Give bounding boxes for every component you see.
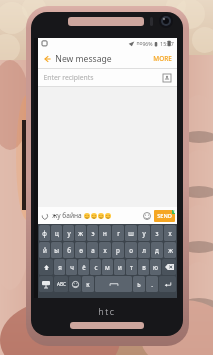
staticText: ц (55, 229, 59, 237)
button[interactable]: MORE (153, 54, 177, 63)
staticText: ш (128, 229, 134, 237)
button[interactable]: Enter recipients (38, 69, 177, 86)
staticText: н (103, 229, 107, 237)
button[interactable]: х (99, 242, 111, 258)
button[interactable]: Enter (159, 276, 176, 292)
button[interactable]: ABC (54, 276, 68, 292)
button[interactable]: у (63, 225, 74, 241)
button[interactable]: ж (75, 225, 86, 241)
button[interactable]: о (125, 242, 137, 258)
button[interactable]: й (39, 242, 50, 258)
staticText: б (67, 246, 71, 254)
button[interactable]: и (114, 259, 125, 275)
button[interactable]: г (112, 225, 124, 241)
staticText: ж (168, 246, 173, 254)
staticText: SEND (157, 212, 172, 220)
button[interactable]: ё (78, 259, 89, 275)
button[interactable]: с (90, 259, 101, 275)
button[interactable]: н (99, 225, 111, 241)
button[interactable]: к (82, 276, 94, 292)
staticText: с (94, 263, 98, 271)
button[interactable]: Backspace (162, 259, 176, 275)
button[interactable]: Shift (39, 259, 53, 275)
staticText: ч (70, 263, 74, 271)
button[interactable]: я (54, 259, 65, 275)
staticText: р (116, 246, 120, 254)
button[interactable]: ц (51, 225, 62, 241)
staticText: ю (153, 263, 158, 271)
staticText: htc (98, 305, 116, 317)
button[interactable]: Keyboard settings (39, 276, 53, 292)
staticText: и (118, 263, 122, 271)
staticText: 15:47 (160, 40, 174, 47)
staticText: к (86, 280, 90, 288)
staticText: жу байна (52, 211, 82, 220)
staticText: ф (42, 229, 47, 237)
staticText: м (105, 263, 110, 271)
button[interactable]: з (151, 225, 163, 241)
button[interactable] (95, 276, 132, 292)
staticText: й (43, 246, 47, 254)
staticText: х (103, 246, 107, 254)
staticText: ё (82, 263, 86, 271)
button[interactable]: д (151, 242, 163, 258)
staticText: MORE (153, 54, 172, 63)
staticText: no (136, 40, 143, 47)
staticText: о (129, 246, 133, 254)
staticText: ABC (57, 281, 66, 287)
button[interactable]: б (63, 242, 74, 258)
button[interactable]: . (146, 276, 158, 292)
button[interactable]: х (164, 225, 176, 241)
button[interactable]: в (138, 259, 149, 275)
staticText: а (91, 246, 95, 254)
button[interactable]: э (87, 225, 98, 241)
staticText: . (151, 280, 153, 288)
button[interactable]: Add contact (160, 71, 174, 85)
staticText: в (142, 263, 146, 271)
button[interactable]: ж (164, 242, 176, 258)
staticText: ж (78, 229, 83, 237)
button[interactable]: л (138, 242, 150, 258)
staticText: 1 (173, 210, 175, 214)
button[interactable]: Back (38, 50, 55, 67)
button[interactable]: м (102, 259, 113, 275)
staticText: у (142, 229, 146, 237)
staticText: ө (79, 246, 83, 254)
button[interactable]: Emoji (69, 276, 81, 292)
staticText: ь (137, 280, 141, 288)
button[interactable]: а (87, 242, 98, 258)
staticText: 96% (142, 40, 153, 47)
button[interactable]: ш (125, 225, 137, 241)
button[interactable]: SEND (154, 210, 175, 222)
staticText: ы (54, 246, 59, 254)
staticText: э (91, 229, 95, 237)
staticText: т (130, 263, 133, 271)
staticText: х (168, 229, 172, 237)
staticText: г (117, 229, 120, 237)
button[interactable]: Attach (38, 209, 52, 223)
staticText: з (155, 229, 159, 237)
staticText: New message (55, 53, 112, 65)
button[interactable]: ө (75, 242, 86, 258)
button[interactable]: р (112, 242, 124, 258)
button[interactable]: у (138, 225, 150, 241)
button[interactable]: ч (66, 259, 77, 275)
button[interactable]: ь (133, 276, 145, 292)
button[interactable]: ф (39, 225, 50, 241)
button[interactable]: ю (150, 259, 161, 275)
staticText: л (142, 246, 146, 254)
button[interactable]: ы (51, 242, 62, 258)
staticText: у (67, 229, 71, 237)
staticText: я (58, 263, 62, 271)
button[interactable]: Emoji (140, 209, 153, 222)
staticText: Enter recipients (43, 73, 94, 82)
button[interactable]: т (126, 259, 137, 275)
staticText: д (155, 246, 159, 254)
